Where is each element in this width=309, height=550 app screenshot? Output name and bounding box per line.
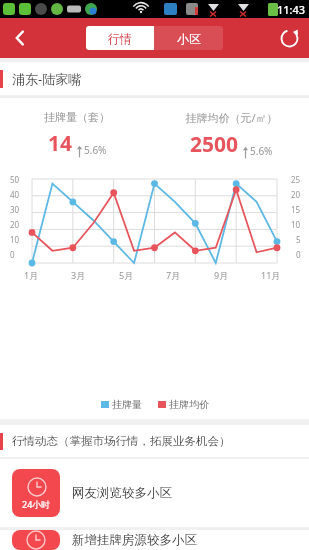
staticText: 9月 xyxy=(214,269,229,281)
staticText: 30 xyxy=(10,204,20,215)
staticText: 11月 xyxy=(261,269,281,281)
button[interactable]: Refresh xyxy=(269,18,309,58)
button[interactable]: 24小时 xyxy=(0,459,309,527)
staticText: 浦东-陆家嘴 xyxy=(12,70,82,88)
staticText: 10 xyxy=(10,234,20,245)
staticText: 20 xyxy=(291,189,301,200)
staticText: 0 xyxy=(10,249,15,260)
staticText: 11:43 xyxy=(277,2,306,17)
staticText: 5.6% xyxy=(250,144,273,158)
staticText: 挂牌均价 xyxy=(169,398,209,411)
button[interactable]: 行情 xyxy=(86,26,154,50)
staticText: 行情 xyxy=(108,31,132,46)
staticText: 挂牌量 xyxy=(112,398,142,411)
staticText: 1月 xyxy=(24,269,39,281)
staticText: 24小时 xyxy=(22,498,51,510)
staticText: 20 xyxy=(10,219,20,230)
staticText: 2500 xyxy=(190,130,239,159)
staticText: 5月 xyxy=(119,269,134,281)
staticText: 7月 xyxy=(166,269,181,281)
staticText: 3月 xyxy=(71,269,86,281)
button[interactable]: Back xyxy=(0,18,40,58)
staticText: 小区 xyxy=(177,31,201,46)
staticText: 5.6% xyxy=(84,143,107,157)
staticText: 0 xyxy=(296,249,301,260)
staticText: 50 xyxy=(10,174,20,185)
staticText: 网友浏览较多小区 xyxy=(72,485,172,501)
staticText: 14 xyxy=(48,129,73,158)
staticText: 10 xyxy=(291,219,301,230)
staticText: 5 xyxy=(296,234,301,245)
button[interactable]: 7天 xyxy=(0,530,309,550)
button[interactable]: 小区 xyxy=(154,26,223,50)
staticText: 新增挂牌房源较多小区 xyxy=(72,532,197,548)
staticText: 40 xyxy=(10,189,20,200)
staticText: 25 xyxy=(291,174,301,185)
staticText: 15 xyxy=(291,204,301,215)
staticText: 行情动态（掌握市场行情，拓展业务机会） xyxy=(12,434,231,448)
staticText: 挂牌均价（元/㎡） xyxy=(185,110,278,125)
staticText: 挂牌量（套） xyxy=(44,110,110,124)
